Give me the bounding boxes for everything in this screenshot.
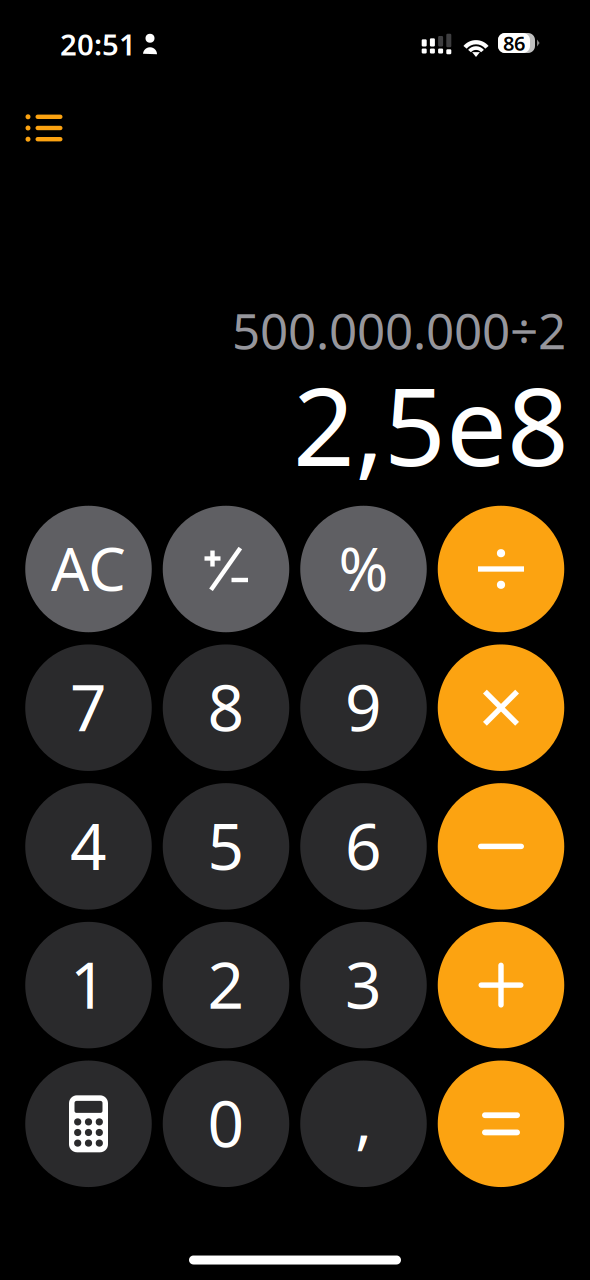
button[interactable]: 5: [163, 783, 289, 910]
staticText: 4: [70, 803, 107, 888]
staticText: 5: [207, 803, 244, 888]
button[interactable]: Plus or minus: [163, 506, 289, 632]
staticText: 6: [345, 803, 382, 888]
button[interactable]: 7: [25, 644, 152, 771]
button[interactable]: AC: [25, 506, 152, 632]
button[interactable]: 0: [163, 1060, 289, 1187]
button[interactable]: 6: [300, 783, 427, 910]
button[interactable]: 4: [25, 783, 152, 910]
staticText: 20:51: [60, 24, 136, 63]
button[interactable]: Divide: [438, 506, 564, 632]
staticText: 0: [207, 1080, 244, 1165]
button[interactable]: Multiply: [438, 644, 564, 771]
button[interactable]: 2: [163, 922, 289, 1048]
button[interactable]: 8: [163, 644, 289, 771]
staticText: %: [338, 528, 388, 608]
button[interactable]: Calculator: [25, 1060, 152, 1187]
staticText: AC: [51, 528, 126, 608]
button[interactable]: 9: [300, 644, 427, 771]
staticText: 9: [345, 664, 382, 749]
staticText: 8: [207, 664, 244, 749]
staticText: 7: [70, 664, 107, 749]
staticText: 3: [345, 941, 382, 1026]
button[interactable]: %: [300, 506, 427, 632]
staticText: 2: [207, 941, 244, 1026]
button[interactable]: 3: [300, 922, 427, 1048]
button[interactable]: Subtract: [438, 783, 564, 910]
button[interactable]: ,: [300, 1060, 427, 1187]
staticText: 500.000.000÷2: [232, 297, 566, 363]
staticText: 86: [503, 30, 525, 56]
button[interactable]: 1: [25, 922, 152, 1048]
button[interactable]: Equals: [438, 1060, 564, 1187]
button[interactable]: Add: [438, 922, 564, 1048]
button[interactable]: History: [7, 95, 81, 161]
staticText: 1: [70, 941, 107, 1026]
staticText: ,: [355, 1076, 372, 1161]
staticText: 2,5e8: [293, 352, 569, 496]
